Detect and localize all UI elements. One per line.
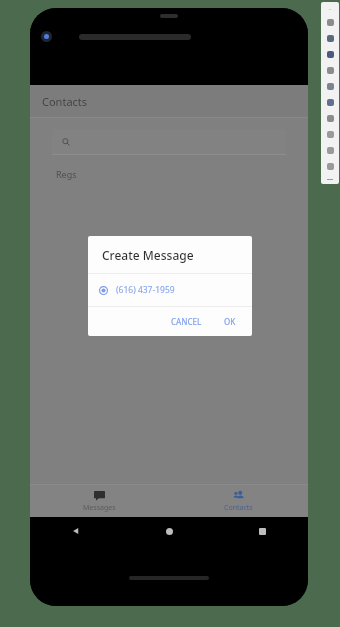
- staticText: (616) 437-1959: [116, 284, 175, 296]
- button[interactable]: Recents: [252, 521, 272, 541]
- button[interactable]: Emulator control: [321, 14, 339, 30]
- staticText: Create Message: [102, 247, 194, 263]
- button[interactable]: Regs: [30, 163, 308, 185]
- staticText: CANCEL: [171, 316, 202, 327]
- button[interactable]: Emulator control: [321, 94, 339, 110]
- button[interactable]: [52, 129, 286, 155]
- button[interactable]: Messages: [30, 485, 169, 517]
- staticText: Regs: [56, 168, 77, 180]
- button[interactable]: Emulator control: [321, 62, 339, 78]
- button[interactable]: Back: [66, 521, 86, 541]
- staticText: OK: [224, 316, 236, 327]
- staticText: Contacts: [224, 503, 253, 513]
- button[interactable]: Emulator control: [321, 126, 339, 142]
- button[interactable]: Home: [159, 521, 179, 541]
- button[interactable]: OK: [217, 311, 243, 332]
- button[interactable]: Emulator control: [321, 78, 339, 94]
- button[interactable]: CANCEL: [164, 311, 209, 332]
- button[interactable]: Emulator control: [321, 158, 339, 174]
- button[interactable]: (616) 437-1959: [88, 274, 252, 306]
- staticText: ··: [329, 6, 332, 13]
- staticText: Contacts: [42, 94, 88, 109]
- button[interactable]: Emulator control: [321, 30, 339, 46]
- button[interactable]: Emulator control: [321, 46, 339, 62]
- button[interactable]: Emulator control: [321, 110, 339, 126]
- button[interactable]: Contacts: [169, 485, 308, 517]
- button[interactable]: Emulator control: [321, 142, 339, 158]
- staticText: Messages: [83, 503, 116, 513]
